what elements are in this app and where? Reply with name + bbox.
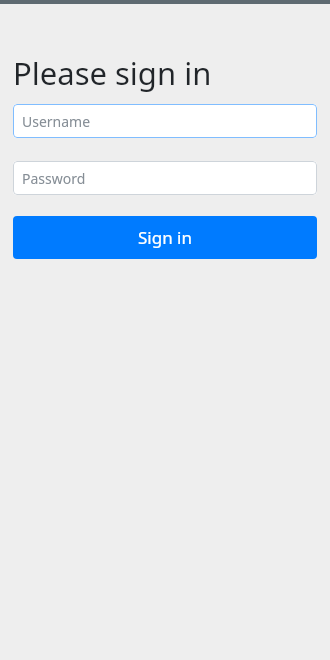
staticText: Username (22, 112, 91, 131)
staticText: Sign in (138, 226, 192, 249)
button[interactable]: Password (13, 161, 317, 195)
button[interactable]: Sign in (13, 216, 317, 259)
staticText: Please sign in (13, 52, 212, 94)
button[interactable]: Username (13, 104, 317, 138)
staticText: Password (22, 169, 86, 188)
